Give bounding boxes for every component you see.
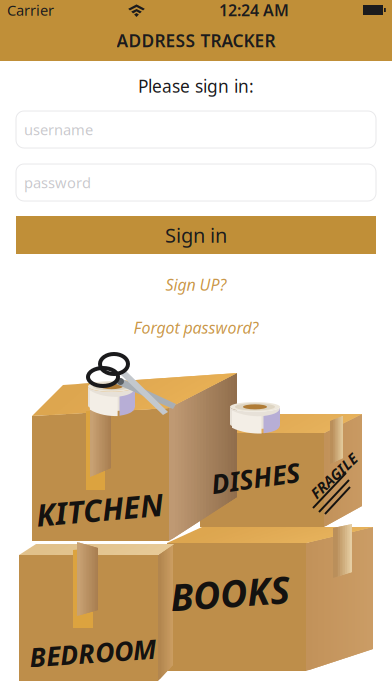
staticText: DISHES bbox=[211, 460, 300, 495]
staticText: Please sign in: bbox=[138, 74, 254, 97]
staticText: Forgot password? bbox=[133, 317, 258, 338]
staticText: BEDROOM bbox=[29, 635, 156, 670]
staticText: FRAGILE bbox=[305, 466, 363, 485]
staticText: KITCHEN bbox=[36, 489, 163, 530]
staticText: username bbox=[24, 120, 93, 139]
staticText: ADDRESS TRACKER bbox=[116, 29, 275, 52]
staticText: Sign in bbox=[165, 222, 227, 248]
staticText: BOOKS bbox=[170, 568, 290, 618]
button[interactable]: Sign in bbox=[16, 216, 376, 254]
button[interactable]: Forgot password? bbox=[0, 315, 392, 340]
staticText: 12:24 AM bbox=[219, 0, 289, 21]
staticText: Sign UP? bbox=[165, 274, 226, 295]
staticText: password bbox=[24, 173, 91, 192]
button[interactable]: Sign UP? bbox=[0, 254, 392, 315]
staticText: Carrier bbox=[7, 0, 54, 20]
